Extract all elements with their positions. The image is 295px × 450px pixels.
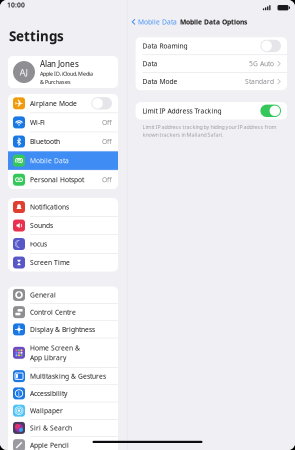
staticText: 10:00	[7, 0, 25, 9]
staticText: AJ	[19, 66, 28, 78]
staticText: Off	[102, 175, 112, 184]
button[interactable]: Display & Brightness	[8, 321, 118, 338]
staticText: ☾	[14, 238, 24, 250]
staticText: Sounds	[30, 221, 53, 230]
button[interactable]: Data Mode	[136, 73, 287, 90]
staticText: App Library	[30, 353, 66, 362]
button[interactable]: Mobile Data	[132, 17, 177, 26]
button[interactable]: Wallpaper	[8, 402, 118, 419]
staticText: Limit IP Address Tracking	[143, 106, 222, 115]
staticText: Screen Time	[30, 258, 70, 267]
staticText: Off	[102, 118, 112, 127]
button[interactable]: AJ	[0, 56, 127, 88]
button[interactable]: Siri & Search	[8, 419, 118, 437]
button[interactable]: i	[8, 385, 118, 402]
staticText: Home Screen &	[30, 343, 80, 352]
staticText: Wi-Fi	[30, 118, 45, 127]
button[interactable]: ☾	[8, 235, 118, 253]
button[interactable]: Control Centre	[8, 304, 118, 321]
staticText: Settings	[9, 27, 64, 45]
staticText: i	[18, 389, 20, 398]
button[interactable]: Screen Time	[8, 253, 118, 271]
button[interactable]: Multitasking & Gestures	[8, 368, 118, 385]
staticText: Data	[143, 59, 158, 68]
staticText: Mobile Data Options	[180, 17, 247, 26]
staticText: Mobile Data	[138, 17, 177, 26]
staticText: 5G Auto	[249, 59, 274, 68]
button[interactable]: Data	[136, 55, 287, 73]
button[interactable]: Data Roaming	[136, 37, 287, 55]
staticText: Data Roaming	[143, 41, 188, 50]
staticText: known trackers in Mail and Safari.	[143, 131, 223, 138]
staticText: Personal Hotspot	[30, 175, 84, 184]
staticText: Apple Pencil	[30, 441, 69, 450]
button[interactable]: Personal Hotspot	[8, 170, 118, 189]
staticText: Wallpaper	[30, 406, 63, 415]
staticText: Display & Brightness	[30, 325, 95, 334]
staticText: & Purchases	[40, 78, 71, 85]
staticText: Accessibility	[30, 389, 67, 398]
button[interactable]: Sounds	[8, 216, 118, 235]
button[interactable]: Wi-Fi	[8, 113, 118, 132]
staticText: Siri & Search	[30, 423, 72, 432]
staticText: Focus	[30, 240, 47, 248]
staticText: Airplane Mode	[30, 99, 77, 108]
staticText: ✈	[14, 97, 23, 109]
staticText: Mobile Data	[30, 156, 69, 165]
staticText: Limit IP address tracking by hiding your…	[143, 123, 277, 131]
button[interactable]: General	[8, 286, 118, 304]
staticText: Standard	[245, 77, 274, 86]
staticText: General	[30, 290, 56, 299]
staticText: Bluetooth	[30, 137, 60, 146]
button[interactable]: Bluetooth	[8, 132, 118, 151]
staticText: Multitasking & Gestures	[30, 372, 106, 381]
button[interactable]: Home Screen &	[8, 338, 118, 368]
staticText: Apple ID, iCloud, Media	[40, 70, 93, 77]
button[interactable]: Limit IP Address Tracking	[136, 102, 287, 119]
staticText: Control Centre	[30, 308, 76, 317]
button[interactable]: Apple Pencil	[8, 437, 118, 450]
button[interactable]: Mobile Data	[8, 151, 118, 170]
button[interactable]: ✈	[8, 94, 118, 113]
staticText: Notifications	[30, 203, 69, 211]
staticText: Alan Jones	[40, 59, 79, 69]
staticText: Data Mode	[143, 77, 178, 86]
staticText: Off	[102, 137, 112, 146]
button[interactable]: Notifications	[8, 198, 118, 216]
